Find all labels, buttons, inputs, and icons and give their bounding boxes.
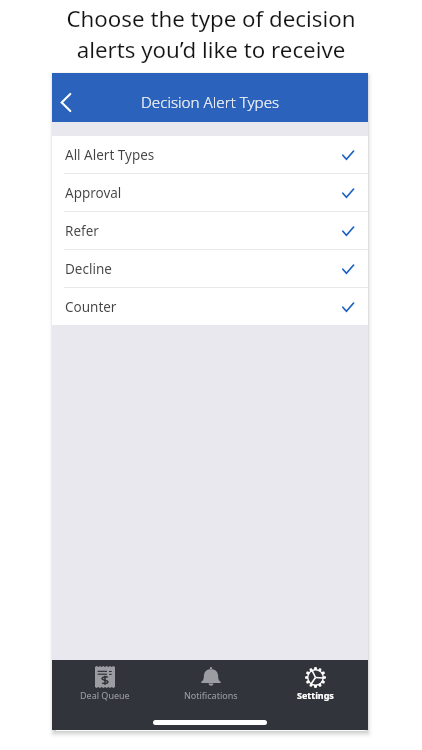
button[interactable]: Deal Queue: [52, 666, 158, 701]
staticText: Decline: [65, 260, 112, 278]
staticText: Counter: [65, 298, 117, 316]
button[interactable]: All Alert Types: [52, 136, 368, 173]
button[interactable]: Refer: [52, 212, 368, 249]
staticText: Approval: [65, 184, 122, 202]
staticText: Choose the type of decision alerts you’d…: [66, 3, 356, 65]
staticText: Notifications: [184, 689, 238, 701]
button[interactable]: Back: [53, 89, 79, 115]
button[interactable]: Settings: [263, 666, 368, 701]
button[interactable]: Notifications: [158, 666, 263, 701]
staticText: Settings: [297, 689, 334, 701]
staticText: Decision Alert Types: [141, 92, 280, 113]
button[interactable]: Decline: [52, 250, 368, 287]
staticText: Refer: [65, 222, 99, 240]
button[interactable]: Counter: [52, 288, 368, 325]
button[interactable]: Approval: [52, 174, 368, 211]
staticText: All Alert Types: [65, 146, 155, 164]
staticText: Deal Queue: [80, 689, 130, 701]
